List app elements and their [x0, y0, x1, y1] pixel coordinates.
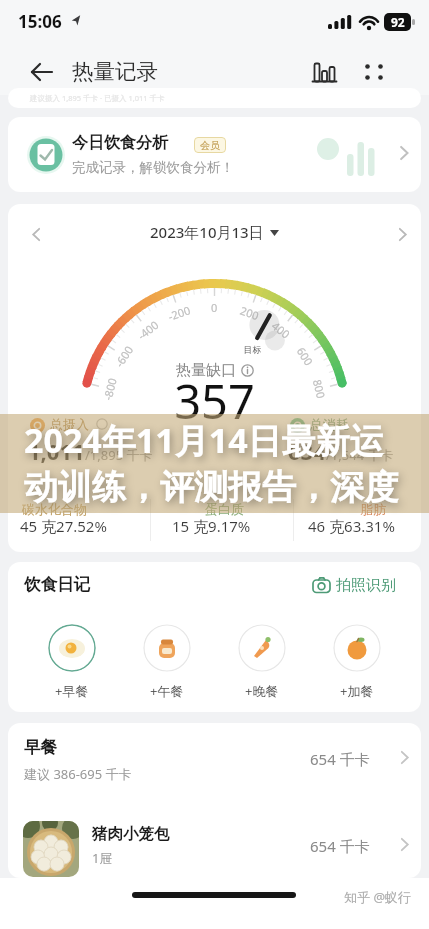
staticText: 2023年10月13日 — [150, 222, 264, 242]
staticText: 今日饮食分析 — [72, 133, 168, 153]
staticText: 92 — [391, 14, 405, 30]
staticText: 建议摄入 1,895 千卡 · 已摄入 1,011 千卡 — [30, 93, 165, 103]
staticText: 猪肉小笼包 — [92, 824, 170, 844]
staticText: 357 — [8, 369, 421, 433]
button[interactable] — [386, 220, 418, 248]
button[interactable]: 拍照识别 — [312, 572, 396, 598]
staticText: +午餐 — [150, 682, 184, 700]
staticText: 知乎 @蚁行 — [344, 888, 412, 906]
staticText: 脂肪 — [360, 501, 386, 517]
staticText: 碳水化合物 — [22, 501, 87, 517]
staticText: 2024年11月14日最新运 动训练，评测报告，深度 — [24, 417, 398, 509]
staticText: 总消耗 — [310, 416, 349, 432]
button[interactable]: +加餐 — [333, 624, 381, 700]
staticText: 早餐 — [24, 737, 57, 758]
staticText: +加餐 — [340, 682, 374, 700]
button[interactable]: 2023年10月13日 — [8, 222, 421, 242]
button[interactable]: 今日饮食分析 — [8, 117, 421, 192]
staticText: 45 克27.52% — [20, 516, 107, 536]
staticText: 饮食日记 — [24, 574, 90, 595]
staticText: 总摄入 — [50, 416, 89, 432]
staticText: /1,544 千卡 — [326, 446, 394, 464]
staticText: 热量记录 — [72, 58, 158, 85]
staticText: 1,011 — [28, 436, 85, 466]
button[interactable]: +晚餐 — [238, 624, 286, 700]
staticText: 654 千卡 — [310, 749, 370, 769]
staticText: 15:06 — [18, 10, 62, 33]
staticText: +晚餐 — [245, 682, 279, 700]
staticText: 15 克9.17% — [172, 516, 251, 536]
staticText: /1,895 千卡 — [85, 446, 153, 464]
staticText: 拍照识别 — [336, 576, 396, 595]
staticText: 46 克63.31% — [308, 516, 395, 536]
staticText: 会员 — [200, 139, 220, 152]
button[interactable]: 早餐 — [8, 723, 421, 798]
button[interactable] — [22, 52, 62, 92]
button[interactable]: +早餐 — [48, 624, 96, 700]
button[interactable]: +午餐 — [143, 624, 191, 700]
staticText: +早餐 — [55, 682, 89, 700]
staticText: 654 千卡 — [310, 836, 370, 856]
button[interactable] — [356, 54, 392, 90]
staticText: 热量缺口 — [176, 361, 236, 380]
staticText: 建议 386-695 千卡 — [24, 765, 132, 783]
staticText: 1屉 — [92, 849, 113, 867]
button[interactable] — [306, 54, 342, 90]
staticText: 634 — [288, 436, 326, 466]
button[interactable] — [20, 220, 52, 248]
button[interactable]: 猪肉小笼包 — [8, 811, 421, 877]
staticText: 完成记录，解锁饮食分析！ — [72, 159, 234, 176]
staticText: 蛋白质 — [205, 501, 244, 517]
